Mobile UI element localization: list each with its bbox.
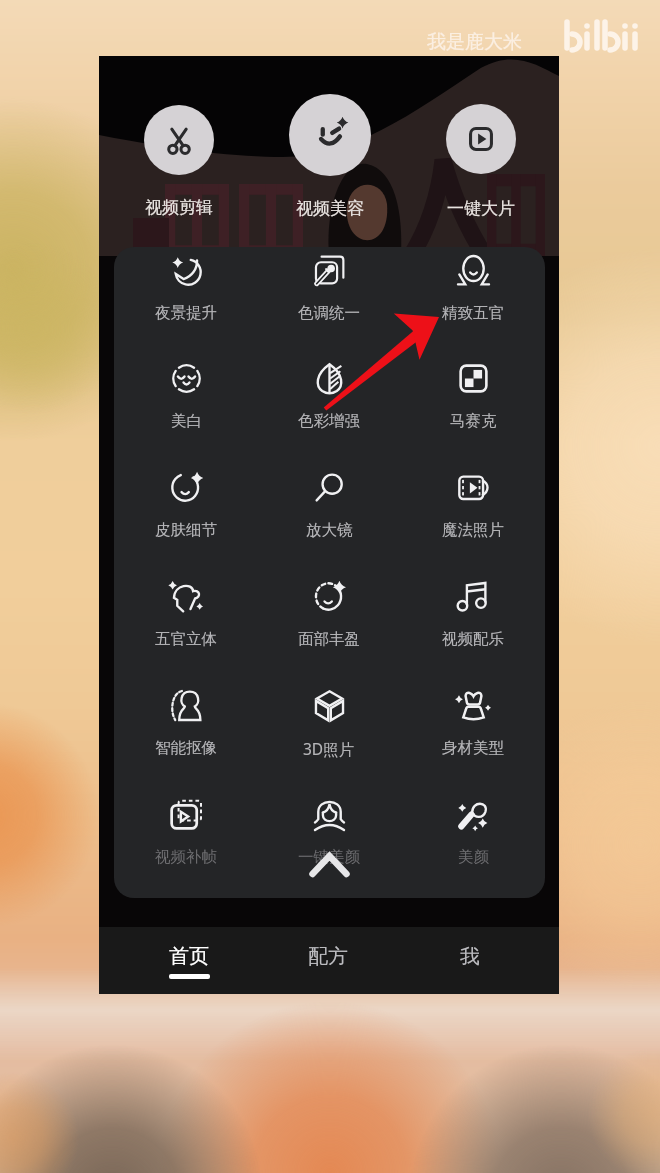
button[interactable]: 一键大片 <box>421 104 541 219</box>
button[interactable]: 美颜 <box>415 798 531 867</box>
staticText: 智能抠像 <box>155 738 217 758</box>
staticText: 色调统一 <box>298 303 360 323</box>
button[interactable]: 马赛克 <box>415 362 531 431</box>
staticText: 一键大片 <box>447 198 515 219</box>
staticText: 配方 <box>308 944 348 969</box>
button[interactable]: 色调统一 <box>271 254 387 323</box>
staticText: 一键美颜 <box>298 847 360 867</box>
staticText: 视频配乐 <box>442 629 504 649</box>
button[interactable]: 精致五官 <box>415 254 531 323</box>
button[interactable]: 视频配乐 <box>415 580 531 649</box>
staticText: 我 <box>460 944 480 969</box>
button[interactable]: 美白 <box>128 362 244 431</box>
staticText: 魔法照片 <box>442 520 504 540</box>
staticText: 美颜 <box>458 847 489 867</box>
staticText: 视频剪辑 <box>145 197 213 218</box>
button[interactable]: 视频美容 <box>270 94 390 219</box>
button[interactable]: 皮肤细节 <box>128 471 244 540</box>
staticText: 马赛克 <box>450 411 497 431</box>
staticText: 放大镜 <box>306 520 353 540</box>
staticText: 精致五官 <box>442 303 504 323</box>
staticText: 3D照片 <box>303 738 355 759</box>
button[interactable]: 魔法照片 <box>415 471 531 540</box>
button[interactable]: 我 <box>435 927 505 994</box>
button[interactable]: 五官立体 <box>128 580 244 649</box>
staticText: 面部丰盈 <box>298 629 360 649</box>
button[interactable]: 夜景提升 <box>128 254 244 323</box>
button[interactable]: 首页 <box>154 927 224 994</box>
staticText: 身材美型 <box>442 738 504 758</box>
button[interactable]: 色彩增强 <box>271 362 387 431</box>
button[interactable]: 放大镜 <box>271 471 387 540</box>
staticText: 色彩增强 <box>298 411 360 431</box>
button[interactable]: 一键美颜 <box>271 798 387 867</box>
button[interactable]: 视频补帧 <box>128 798 244 867</box>
staticText: 视频美容 <box>296 198 364 219</box>
button[interactable]: 身材美型 <box>415 689 531 758</box>
button[interactable]: 配方 <box>293 927 363 994</box>
staticText: 美白 <box>171 411 202 431</box>
button[interactable]: 面部丰盈 <box>271 580 387 649</box>
staticText: 五官立体 <box>155 629 217 649</box>
button[interactable]: 3D照片 <box>271 689 387 759</box>
staticText: 首页 <box>169 944 209 969</box>
button[interactable]: 智能抠像 <box>128 689 244 758</box>
staticText: 我是鹿大米 <box>427 30 522 54</box>
button[interactable]: 视频剪辑 <box>119 105 239 218</box>
staticText: 夜景提升 <box>155 303 217 323</box>
staticText: 视频补帧 <box>155 847 217 867</box>
staticText: 皮肤细节 <box>155 520 217 540</box>
